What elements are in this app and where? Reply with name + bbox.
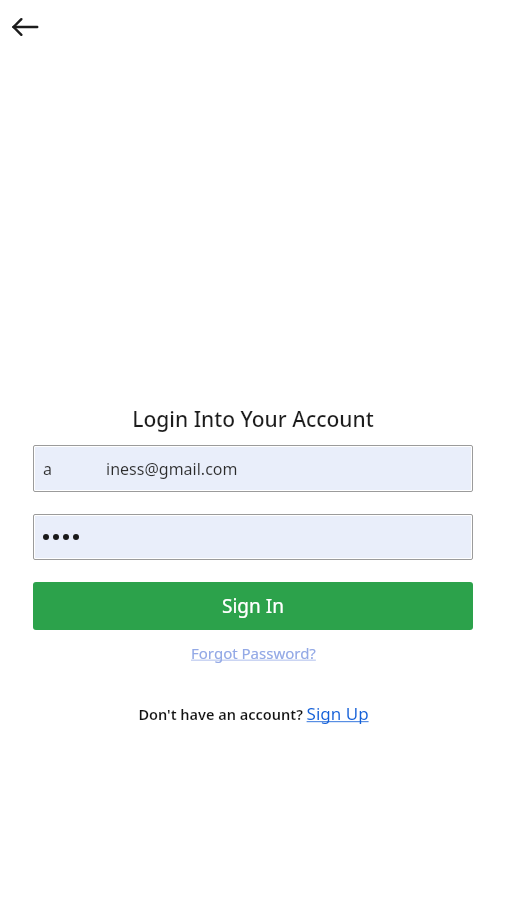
staticText: a iness@gmail.com (43, 458, 238, 480)
button[interactable]: Don't have an account? Sign Up (134, 698, 373, 729)
button[interactable]: Forgot Password? (187, 639, 320, 667)
button[interactable] (35, 516, 471, 558)
button[interactable]: Back (8, 10, 42, 44)
staticText: Sign In (222, 593, 284, 619)
staticText: Forgot Password? (191, 643, 316, 663)
button[interactable]: a iness@gmail.com (35, 447, 471, 490)
staticText: Don't have an account? Sign Up (138, 702, 369, 725)
button[interactable]: Sign In (33, 582, 473, 630)
staticText: Login Into Your Account (132, 405, 374, 434)
